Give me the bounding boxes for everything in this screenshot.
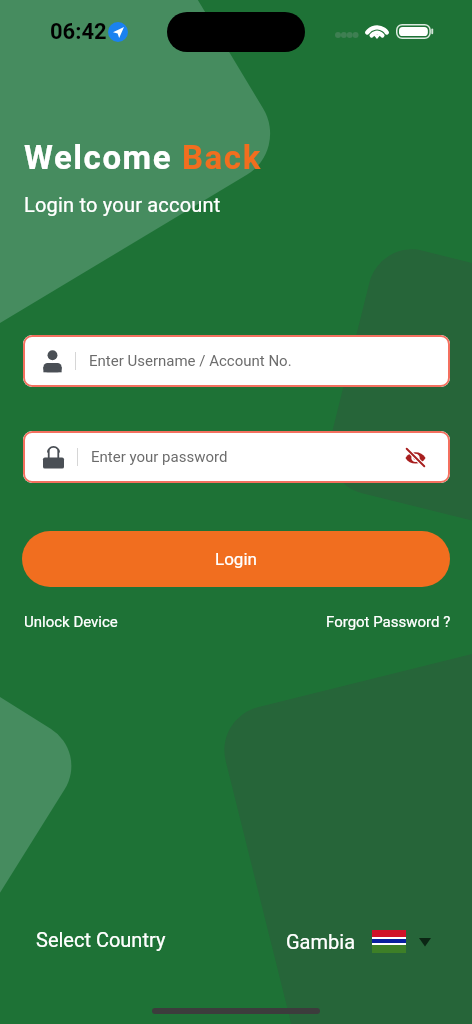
button[interactable]: Gambia xyxy=(286,930,431,953)
button[interactable]: Enter Username / Account No. xyxy=(23,335,450,387)
staticText: Forgot Password ? xyxy=(326,613,451,631)
staticText: Login xyxy=(215,549,257,569)
staticText: Welcome xyxy=(24,138,182,177)
staticText: Enter Username / Account No. xyxy=(89,352,292,370)
staticText: 06:42 xyxy=(50,19,107,45)
staticText: Gambia xyxy=(286,930,356,953)
button[interactable]: Forgot Password ? xyxy=(326,613,451,631)
staticText: Unlock Device xyxy=(24,613,118,631)
button[interactable]: Show password xyxy=(400,442,430,472)
button[interactable]: Login xyxy=(22,531,450,587)
button[interactable]: Enter your password xyxy=(23,431,450,483)
staticText: Back xyxy=(182,138,262,177)
staticText: Enter your password xyxy=(91,448,228,466)
staticText: Login to your account xyxy=(24,193,221,216)
button[interactable]: Unlock Device xyxy=(24,613,118,631)
staticText: Select Country xyxy=(36,928,166,951)
